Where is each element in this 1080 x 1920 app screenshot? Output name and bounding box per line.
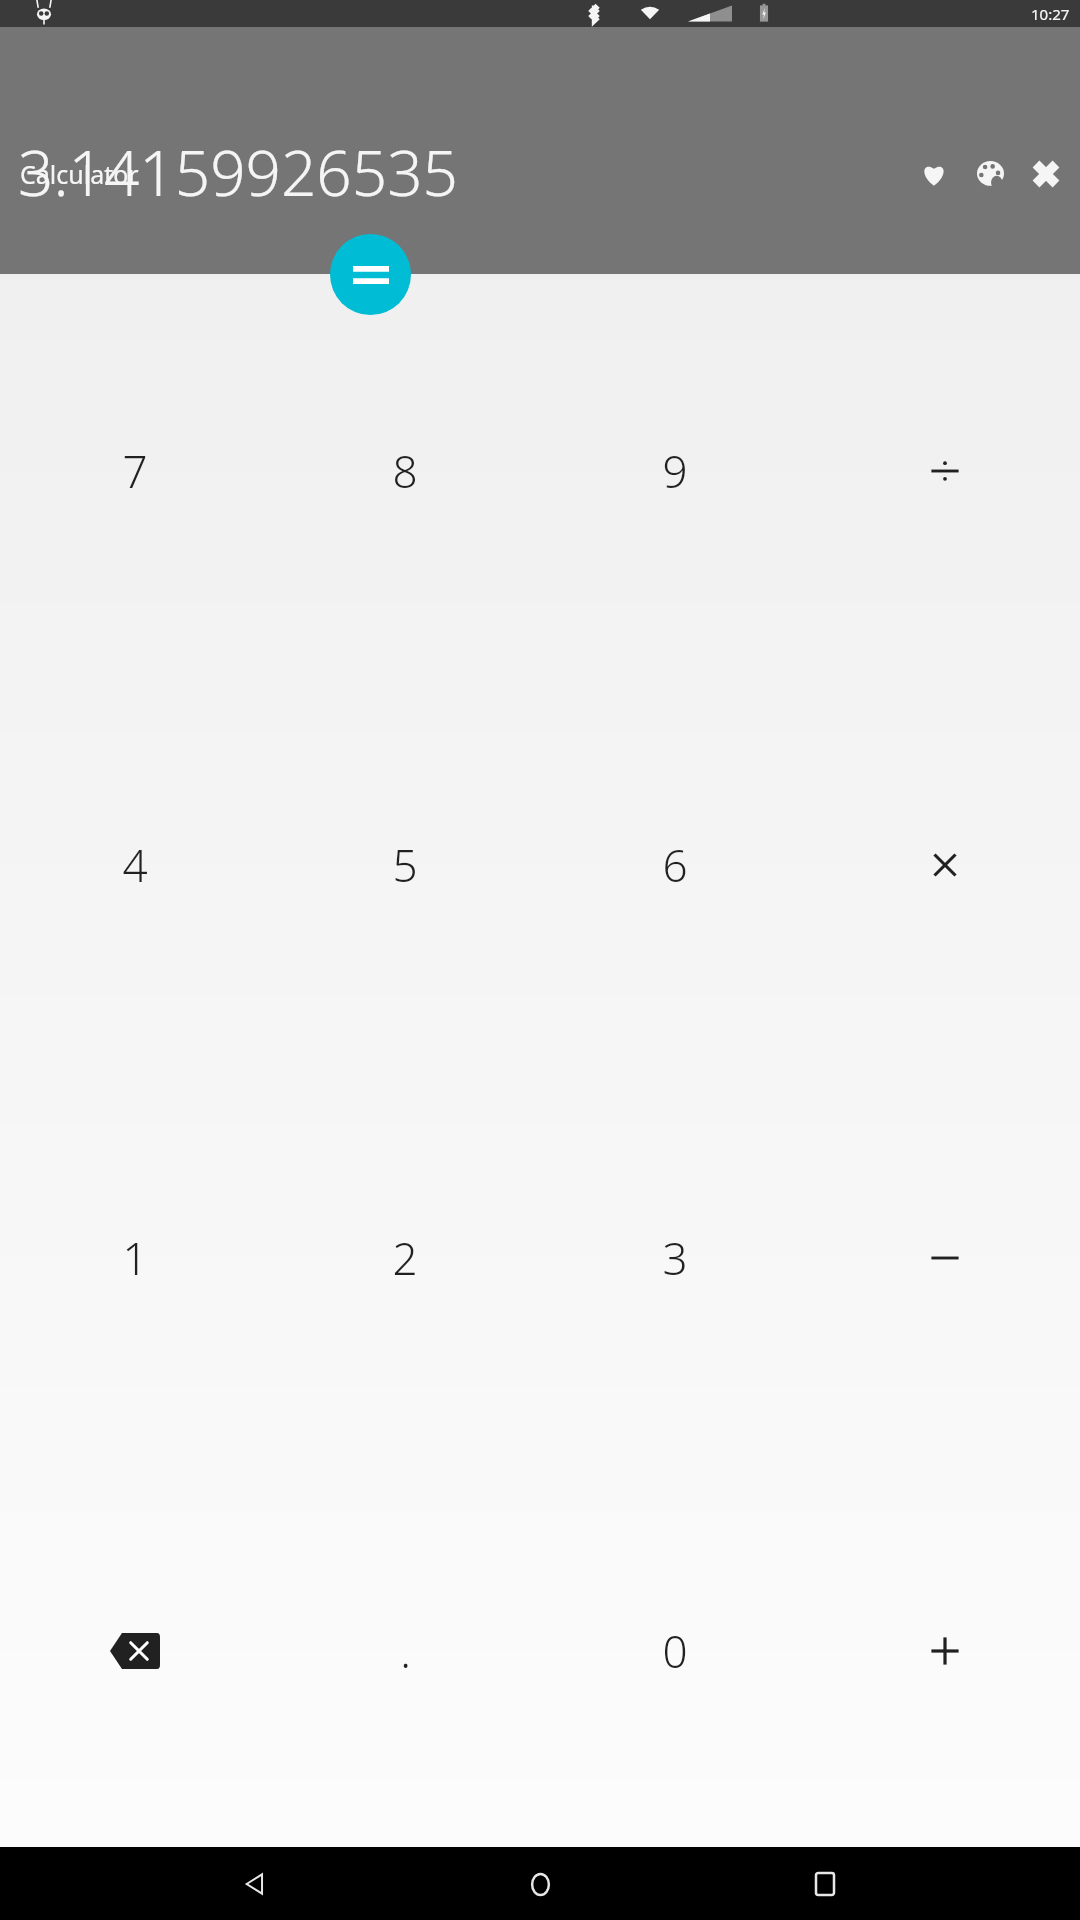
button[interactable]: Home: [510, 1854, 570, 1914]
button[interactable]: 6: [540, 668, 810, 1061]
button[interactable]: Back: [225, 1854, 285, 1914]
button[interactable]: [810, 274, 1080, 668]
button[interactable]: 4: [0, 668, 270, 1061]
staticText: 0: [662, 1621, 688, 1681]
button[interactable]: 8: [270, 274, 540, 668]
button[interactable]: Favorite: [906, 146, 962, 202]
staticText: 10:27: [1031, 4, 1070, 24]
button[interactable]: Recents: [795, 1854, 855, 1914]
button[interactable]: Equals: [330, 234, 411, 315]
button[interactable]: Theme: [962, 146, 1018, 202]
button[interactable]: Delete: [0, 1454, 270, 1847]
button[interactable]: 3: [540, 1061, 810, 1454]
button[interactable]: 5: [270, 668, 540, 1061]
button[interactable]: [810, 668, 1080, 1061]
staticText: 4: [122, 835, 148, 895]
button[interactable]: [810, 1061, 1080, 1454]
staticText: 6: [662, 835, 688, 895]
button[interactable]: 2: [270, 1061, 540, 1454]
staticText: 3: [662, 1228, 688, 1288]
staticText: 8: [392, 441, 418, 501]
staticText: 5: [392, 835, 418, 895]
button[interactable]: Close: [1018, 146, 1074, 202]
button[interactable]: 0: [540, 1454, 810, 1847]
button[interactable]: 1: [0, 1061, 270, 1454]
staticText: 2: [392, 1228, 418, 1288]
button[interactable]: 9: [540, 274, 810, 668]
staticText: 9: [662, 441, 688, 501]
staticText: 7: [122, 441, 148, 501]
staticText: 1: [122, 1228, 148, 1288]
button[interactable]: [810, 1454, 1080, 1847]
button[interactable]: 7: [0, 274, 270, 668]
staticText: 3.14159926535: [18, 130, 1080, 214]
button[interactable]: Calculator: [20, 157, 139, 191]
staticText: .: [400, 1621, 411, 1681]
